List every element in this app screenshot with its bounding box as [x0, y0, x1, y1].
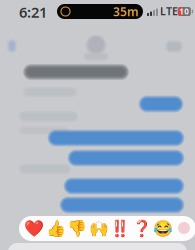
staticText: ❓: [132, 219, 152, 238]
button[interactable]: React with 👎: [66, 216, 88, 241]
staticText: ❤️: [24, 219, 44, 238]
button[interactable]: React with ‼️: [109, 216, 131, 241]
button[interactable]: React with 👍: [45, 216, 67, 241]
staticText: 🙌: [89, 219, 109, 238]
staticText: LTE: [160, 4, 178, 18]
button[interactable]: More reactions: [178, 222, 190, 234]
staticText: 👍: [46, 219, 66, 238]
staticText: ‼️: [110, 219, 130, 238]
staticText: 10: [179, 6, 189, 17]
staticText: 6:21: [19, 2, 47, 22]
button[interactable]: React with ❓: [131, 216, 153, 241]
button[interactable]: React with ❤️: [23, 216, 45, 241]
staticText: 35m: [113, 3, 139, 19]
button[interactable]: React with 😂: [152, 216, 174, 241]
staticText: 😂: [153, 219, 173, 238]
button[interactable]: React with 🙌: [88, 216, 110, 241]
staticText: 👎: [67, 219, 87, 238]
